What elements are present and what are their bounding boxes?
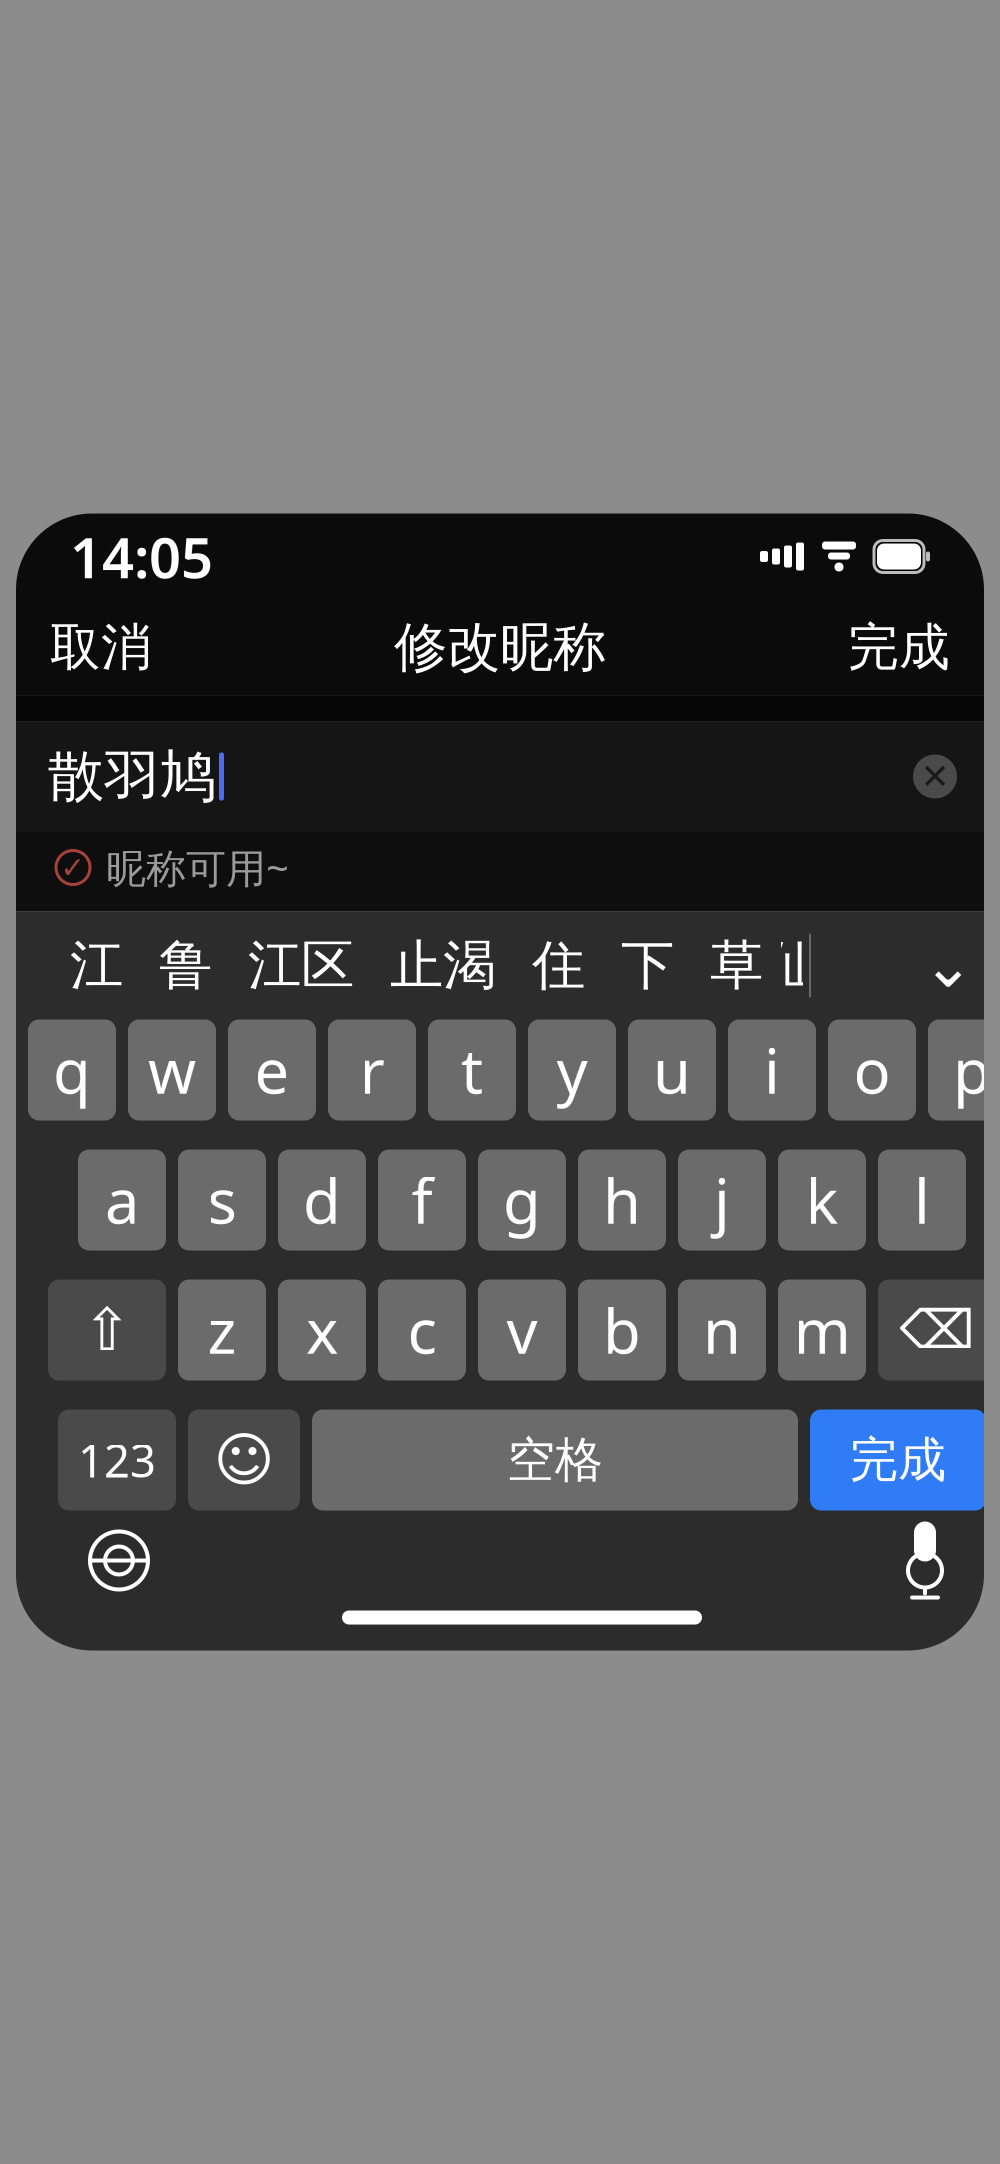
button[interactable]: 清除 [902, 743, 968, 809]
staticText: r [359, 1029, 384, 1111]
button[interactable]: k [778, 1149, 866, 1250]
staticText: h [603, 1159, 641, 1241]
button[interactable]: Shift [48, 1279, 166, 1380]
staticText: p [953, 1029, 991, 1111]
button[interactable]: x [278, 1279, 366, 1380]
staticText: ☺ [213, 1427, 274, 1493]
button[interactable]: p [928, 1019, 1000, 1120]
staticText: 江 [70, 933, 123, 998]
staticText: f [411, 1159, 432, 1241]
staticText: o [853, 1029, 890, 1111]
button[interactable]: u [628, 1019, 716, 1120]
button[interactable]: f [378, 1149, 466, 1250]
staticText: c [407, 1289, 436, 1371]
button[interactable]: t [428, 1019, 516, 1120]
button[interactable]: 完成 [824, 598, 974, 697]
button[interactable]: j [678, 1149, 766, 1250]
staticText: k [805, 1159, 838, 1241]
staticText: 空格 [507, 1430, 603, 1489]
staticText: g [503, 1159, 541, 1241]
button[interactable]: z [178, 1279, 266, 1380]
button[interactable]: 江区 [230, 915, 372, 1015]
staticText: v [506, 1289, 537, 1371]
staticText: 完成 [850, 1430, 946, 1489]
button[interactable]: d [278, 1149, 366, 1250]
button[interactable]: r [328, 1019, 416, 1120]
staticText: 草 [710, 933, 763, 998]
button[interactable]: g [478, 1149, 566, 1250]
button[interactable]: a [78, 1149, 166, 1250]
staticText: z [207, 1289, 236, 1371]
button[interactable]: b [578, 1279, 666, 1380]
button[interactable]: 完成 [810, 1409, 986, 1510]
staticText: 取消 [50, 616, 152, 679]
staticText: d [303, 1159, 341, 1241]
button[interactable]: o [828, 1019, 916, 1120]
staticText: ⇧ [82, 1297, 131, 1363]
button[interactable]: 收起候选词 [900, 915, 996, 1015]
staticText: i [764, 1029, 780, 1111]
staticText: w [148, 1029, 196, 1111]
staticText: 123 [78, 1430, 156, 1490]
staticText: e [254, 1029, 289, 1111]
staticText: 江区 [248, 933, 354, 998]
staticText: 散羽鸠 [48, 742, 216, 811]
staticText: j [714, 1159, 730, 1241]
button[interactable]: i [728, 1019, 816, 1120]
button[interactable]: 仙 [781, 915, 803, 1015]
button[interactable]: 止渴 [372, 915, 514, 1015]
button[interactable]: m [778, 1279, 866, 1380]
staticText: l [914, 1159, 930, 1241]
button[interactable]: 草 [692, 915, 781, 1015]
staticText: ✓ [60, 851, 85, 884]
button[interactable]: w [128, 1019, 216, 1120]
staticText: b [603, 1289, 641, 1371]
staticText: 修改昵称 [394, 615, 606, 680]
staticText: y [556, 1029, 587, 1111]
button[interactable]: c [378, 1279, 466, 1380]
button[interactable]: 空格 [312, 1409, 798, 1510]
staticText: m [793, 1289, 850, 1371]
button[interactable]: n [678, 1279, 766, 1380]
button[interactable]: v [478, 1279, 566, 1380]
staticText: 完成 [848, 616, 950, 679]
staticText: ✕ [920, 757, 949, 796]
button[interactable]: 下 [603, 915, 692, 1015]
staticText: t [461, 1029, 483, 1111]
staticText: 仙 [765, 933, 818, 998]
button[interactable]: 切换键盘 [64, 1514, 174, 1606]
staticText: ⌄ [922, 931, 973, 1000]
button[interactable]: 语音输入 [870, 1514, 980, 1606]
button[interactable]: 表情 [188, 1409, 300, 1510]
staticText: 昵称可用~ [106, 841, 289, 894]
button[interactable]: q [28, 1019, 116, 1120]
staticText: 止渴 [390, 933, 496, 998]
staticText: n [703, 1289, 741, 1371]
staticText: 住 [532, 933, 585, 998]
button[interactable]: l [878, 1149, 966, 1250]
button[interactable]: 住 [514, 915, 603, 1015]
button[interactable]: h [578, 1149, 666, 1250]
button[interactable]: e [228, 1019, 316, 1120]
button[interactable]: y [528, 1019, 616, 1120]
button[interactable]: 删除 [878, 1279, 996, 1380]
staticText: s [207, 1159, 236, 1241]
staticText: 14:05 [70, 519, 213, 594]
staticText: 下 [621, 933, 674, 998]
staticText: x [306, 1289, 338, 1371]
staticText: 鲁 [159, 933, 212, 998]
button[interactable]: 鲁 [141, 915, 230, 1015]
button[interactable]: s [178, 1149, 266, 1250]
staticText: ⌫ [899, 1300, 974, 1360]
button[interactable]: 江 [52, 915, 141, 1015]
staticText: a [105, 1159, 139, 1241]
button[interactable]: 数字键盘 [58, 1409, 176, 1510]
staticText: u [653, 1029, 691, 1111]
button[interactable]: 取消 [26, 598, 176, 697]
staticText: q [53, 1029, 91, 1111]
